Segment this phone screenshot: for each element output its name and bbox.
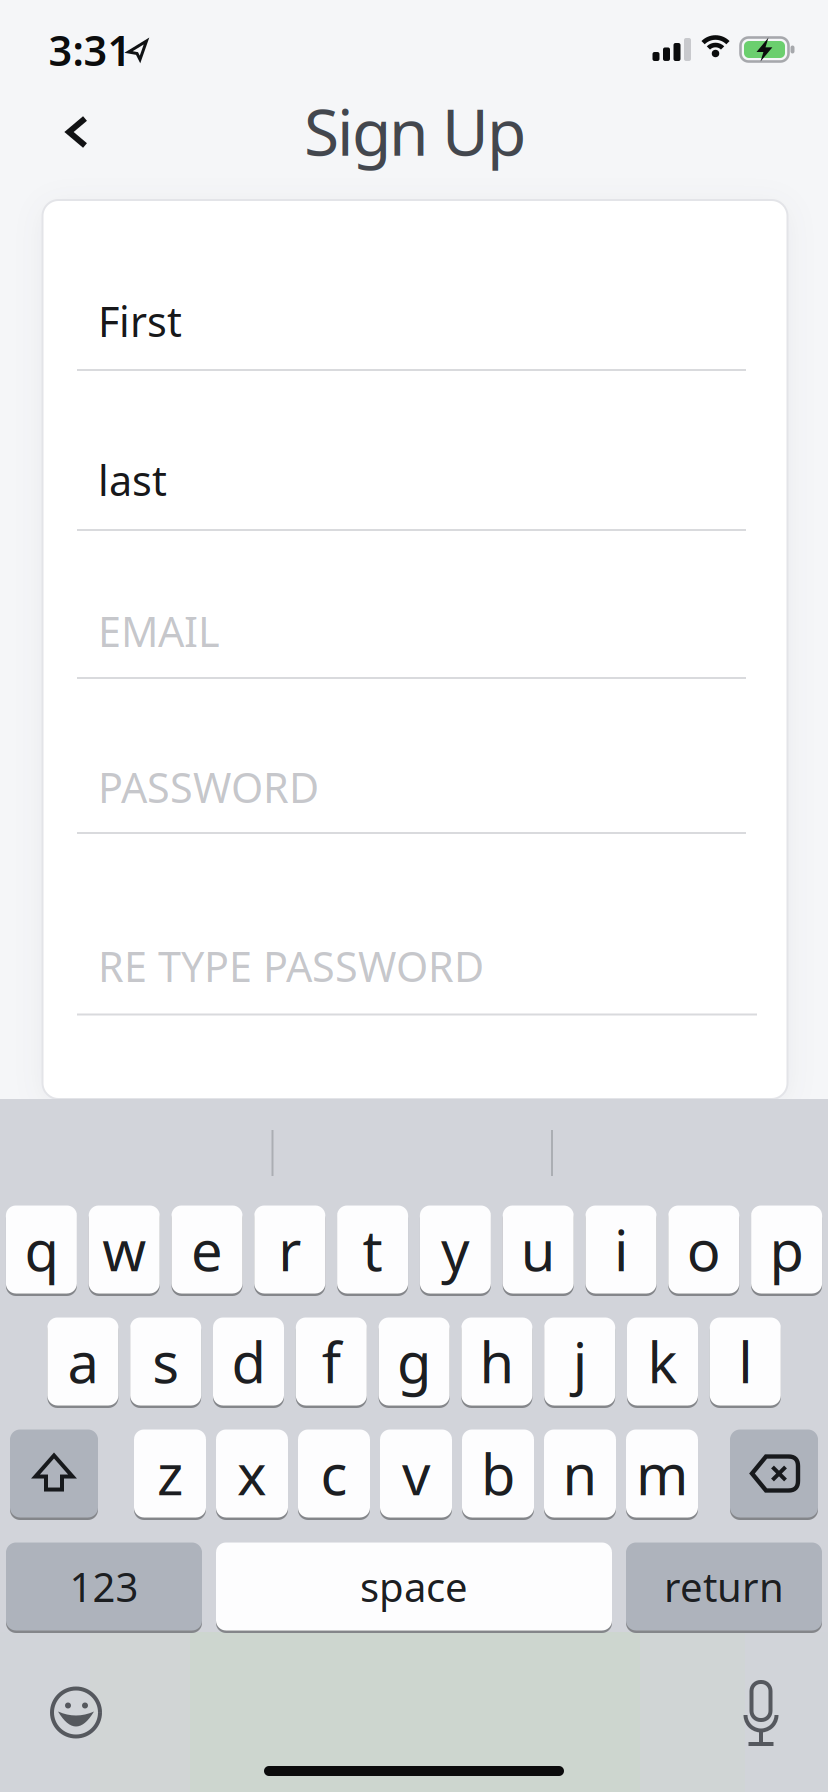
- button[interactable]: Back: [55, 109, 99, 153]
- button[interactable]: i: [585, 1204, 656, 1295]
- button[interactable]: b: [462, 1428, 534, 1519]
- button[interactable]: o: [668, 1204, 739, 1295]
- staticText: q: [24, 1212, 58, 1287]
- button[interactable]: m: [626, 1428, 698, 1519]
- button[interactable]: g: [379, 1316, 450, 1407]
- button[interactable]: RE TYPE PASSWORD: [98, 938, 758, 994]
- button[interactable]: Emoji: [50, 1686, 102, 1738]
- staticText: u: [521, 1212, 556, 1287]
- staticText: RE TYPE PASSWORD: [98, 939, 484, 993]
- button[interactable]: v: [380, 1428, 452, 1519]
- staticText: s: [152, 1324, 179, 1399]
- button[interactable]: j: [544, 1316, 615, 1407]
- staticText: m: [636, 1436, 688, 1511]
- button[interactable]: t: [337, 1204, 408, 1295]
- staticText: return: [664, 1560, 784, 1613]
- staticText: d: [231, 1324, 265, 1399]
- staticText: t: [363, 1212, 383, 1287]
- button[interactable]: d: [213, 1316, 284, 1407]
- button[interactable]: n: [544, 1428, 616, 1519]
- staticText: j: [573, 1324, 587, 1399]
- button[interactable]: k: [627, 1316, 698, 1407]
- staticText: k: [647, 1324, 677, 1399]
- staticText: i: [614, 1212, 628, 1287]
- button[interactable]: Shift: [10, 1428, 98, 1519]
- staticText: PASSWORD: [98, 760, 319, 814]
- button[interactable]: Delete: [730, 1428, 818, 1519]
- button[interactable]: PASSWORD: [98, 759, 758, 815]
- button[interactable]: h: [461, 1316, 532, 1407]
- staticText: y: [441, 1212, 470, 1287]
- button[interactable]: last: [98, 452, 758, 508]
- staticText: o: [687, 1212, 721, 1287]
- staticText: First: [98, 294, 182, 348]
- staticText: f: [322, 1324, 341, 1399]
- staticText: h: [479, 1324, 514, 1399]
- button[interactable]: l: [710, 1316, 781, 1407]
- staticText: w: [102, 1212, 146, 1287]
- staticText: EMAIL: [98, 604, 220, 658]
- staticText: space: [360, 1560, 468, 1613]
- staticText: n: [562, 1436, 597, 1511]
- button[interactable]: s: [130, 1316, 201, 1407]
- button[interactable]: q: [6, 1204, 77, 1295]
- button[interactable]: p: [751, 1204, 822, 1295]
- button[interactable]: x: [216, 1428, 288, 1519]
- staticText: p: [770, 1212, 804, 1287]
- button[interactable]: f: [296, 1316, 367, 1407]
- button[interactable]: z: [134, 1428, 206, 1519]
- staticText: z: [157, 1436, 183, 1511]
- staticText: l: [738, 1324, 752, 1399]
- button[interactable]: 123: [6, 1541, 202, 1632]
- staticText: c: [320, 1436, 347, 1511]
- staticText: g: [397, 1324, 431, 1399]
- staticText: Sign Up: [304, 88, 526, 173]
- button[interactable]: c: [298, 1428, 370, 1519]
- button[interactable]: EMAIL: [98, 603, 758, 659]
- button[interactable]: a: [47, 1316, 118, 1407]
- button[interactable]: First: [98, 293, 758, 349]
- staticText: r: [278, 1212, 301, 1287]
- button[interactable]: w: [89, 1204, 160, 1295]
- staticText: 123: [69, 1560, 138, 1613]
- staticText: a: [67, 1324, 98, 1399]
- staticText: e: [191, 1212, 223, 1287]
- button[interactable]: r: [254, 1204, 325, 1295]
- button[interactable]: y: [420, 1204, 491, 1295]
- button[interactable]: space: [216, 1541, 612, 1632]
- staticText: last: [98, 453, 167, 507]
- staticText: x: [237, 1436, 267, 1511]
- button[interactable]: return: [626, 1541, 822, 1632]
- button[interactable]: e: [171, 1204, 242, 1295]
- staticText: 3:31: [48, 23, 131, 77]
- staticText: v: [402, 1436, 430, 1511]
- staticText: b: [481, 1436, 515, 1511]
- button[interactable]: Dictate: [735, 1682, 787, 1748]
- button[interactable]: u: [503, 1204, 574, 1295]
